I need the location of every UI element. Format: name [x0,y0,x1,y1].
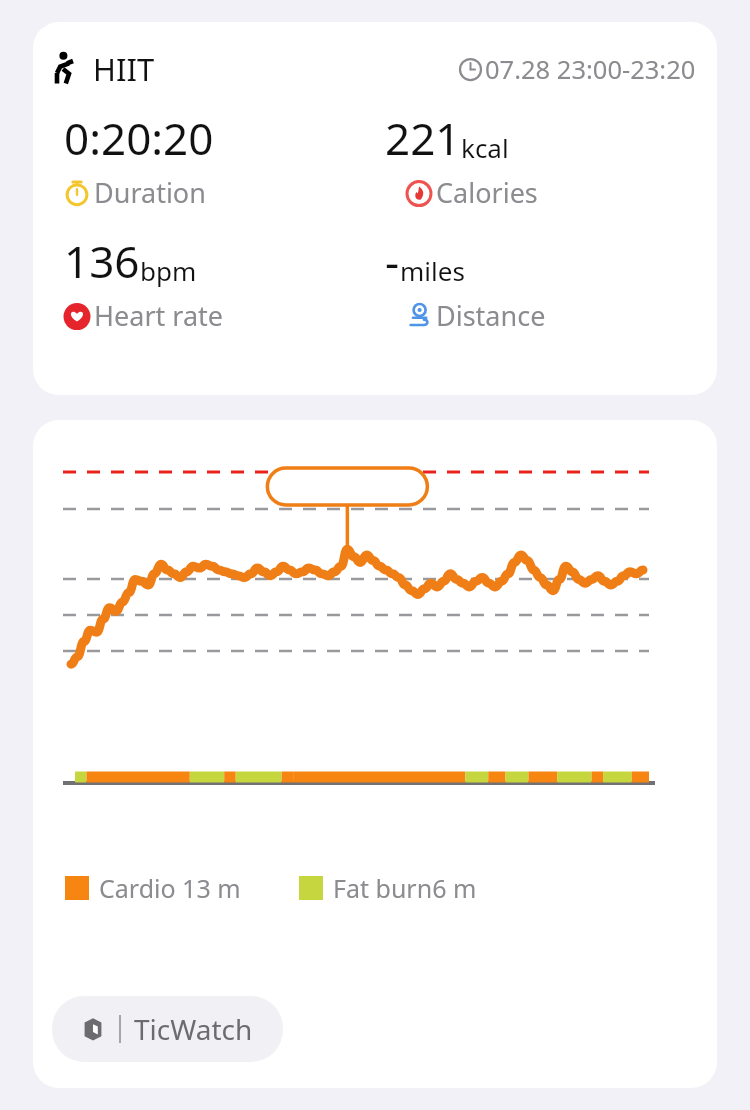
staticText: HIIT [93,48,155,90]
staticText: 136 [64,231,140,291]
button[interactable]: Cardio 13 m [33,420,717,1088]
staticText: Fat burn6 m [333,871,477,905]
staticText: 0:20:20 [64,108,214,168]
staticText: 07.28 23:00-23:20 [485,52,696,87]
staticText: kcal [461,130,509,165]
button[interactable]: TicWatch [52,996,283,1062]
staticText: miles [400,253,465,288]
staticText: TicWatch [134,1010,253,1048]
staticText: - [385,231,400,291]
staticText: 221 [385,108,461,168]
staticText: bpm [140,253,197,288]
staticText: Duration [94,174,206,211]
button[interactable]: HIIT [33,22,717,395]
staticText: Cardio 13 m [99,871,241,905]
staticText: Distance [436,297,546,334]
staticText: Heart rate [94,297,224,334]
staticText: Calories [436,174,538,211]
